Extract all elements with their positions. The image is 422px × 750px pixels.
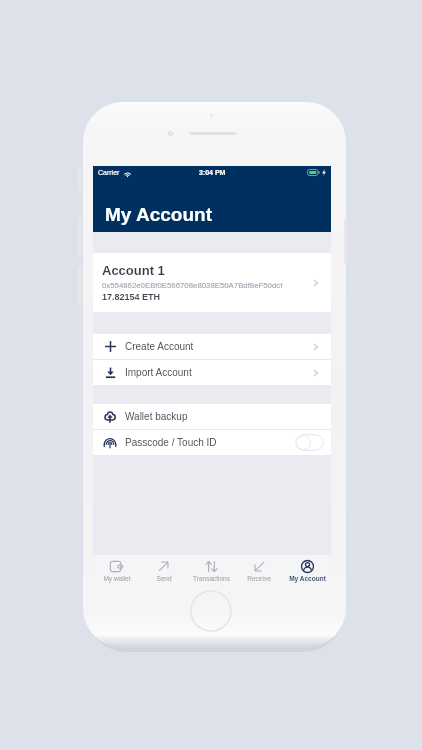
- staticText: Receive: [247, 575, 271, 582]
- staticText: Passcode / Touch ID: [125, 437, 217, 448]
- button[interactable]: Send: [140, 555, 187, 582]
- button[interactable]: Passcode / Touch ID toggle: [295, 434, 324, 451]
- button[interactable]: Wallet backup: [93, 404, 331, 429]
- button[interactable]: Transactions: [187, 555, 235, 582]
- staticText: 17.82154 ETH: [102, 292, 161, 302]
- staticText: My Account: [289, 575, 326, 582]
- staticText: Create Account: [125, 341, 194, 352]
- staticText: My Account: [105, 204, 212, 225]
- button[interactable]: Create Account: [93, 334, 331, 359]
- button[interactable]: Account 1: [93, 253, 331, 312]
- staticText: Wallet backup: [125, 411, 188, 422]
- button[interactable]: My Account: [283, 555, 331, 582]
- staticText: Account 1: [102, 263, 165, 278]
- staticText: 3:04 PM: [199, 169, 226, 177]
- staticText: My wallet: [103, 575, 131, 582]
- button[interactable]: Passcode / Touch ID: [93, 430, 331, 455]
- staticText: Import Account: [125, 367, 192, 378]
- button[interactable]: Receive: [235, 555, 283, 582]
- staticText: Carrier: [98, 169, 120, 177]
- staticText: Transactions: [193, 575, 230, 582]
- staticText: Send: [156, 575, 172, 582]
- staticText: 0x554862e0EBf0E566708e8038E50A7Bdf8eF50d…: [102, 281, 283, 290]
- button[interactable]: Import Account: [93, 360, 331, 385]
- button[interactable]: My wallet: [93, 555, 140, 582]
